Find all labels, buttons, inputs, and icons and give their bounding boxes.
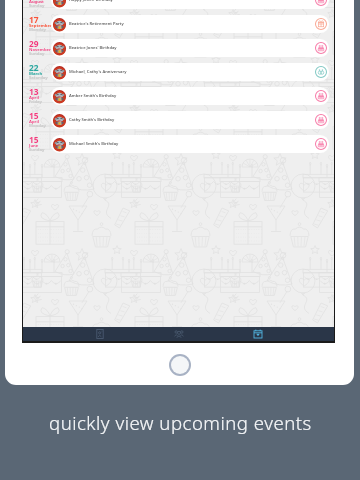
staticText: Monday: [29, 27, 46, 33]
button[interactable]: 15: [23, 108, 334, 132]
staticText: Beatrice's Retirement Party: [69, 21, 124, 27]
staticText: August: [29, 0, 44, 5]
staticText: Sunday: [29, 147, 45, 153]
staticText: Monday: [29, 123, 46, 129]
button[interactable]: 13: [23, 84, 334, 108]
staticText: September: [29, 23, 52, 29]
staticText: Happy Jones' Birthday: [69, 0, 113, 3]
staticText: quickly view upcoming events: [49, 410, 312, 435]
staticText: November: [29, 47, 51, 53]
button[interactable]: 29: [23, 36, 334, 60]
staticText: Sunday: [29, 51, 45, 57]
staticText: April: [29, 95, 39, 101]
staticText: March: [29, 71, 43, 77]
button[interactable]: 8: [23, 0, 334, 12]
button[interactable]: 15: [23, 132, 334, 156]
staticText: 8: [29, 0, 34, 1]
button[interactable]: 17: [23, 12, 334, 36]
staticText: Saturday: [29, 75, 48, 81]
staticText: April: [29, 119, 39, 125]
staticText: 22: [29, 62, 39, 73]
staticText: Cathy Smith's Birthday: [69, 117, 115, 123]
staticText: 13: [29, 86, 39, 97]
staticText: Amber Smith's Birthday: [69, 93, 117, 99]
staticText: 15: [29, 134, 39, 145]
staticText: 29: [29, 38, 39, 49]
staticText: 17: [29, 14, 39, 25]
staticText: Michael, Cathy's Anniversary: [69, 69, 127, 75]
button[interactable]: 22: [23, 60, 334, 84]
button[interactable]: Home: [171, 356, 189, 374]
staticText: June: [29, 143, 39, 149]
staticText: Friday: [29, 99, 42, 105]
staticText: Sunday: [29, 3, 45, 9]
staticText: Michael Smith's Birthday: [69, 141, 119, 147]
staticText: Beatrice Jones' Birthday: [69, 45, 117, 51]
button[interactable]: Contacts: [60, 327, 139, 341]
button[interactable]: Groups: [139, 327, 218, 341]
staticText: 15: [29, 110, 39, 121]
button[interactable]: Events: [218, 327, 297, 341]
